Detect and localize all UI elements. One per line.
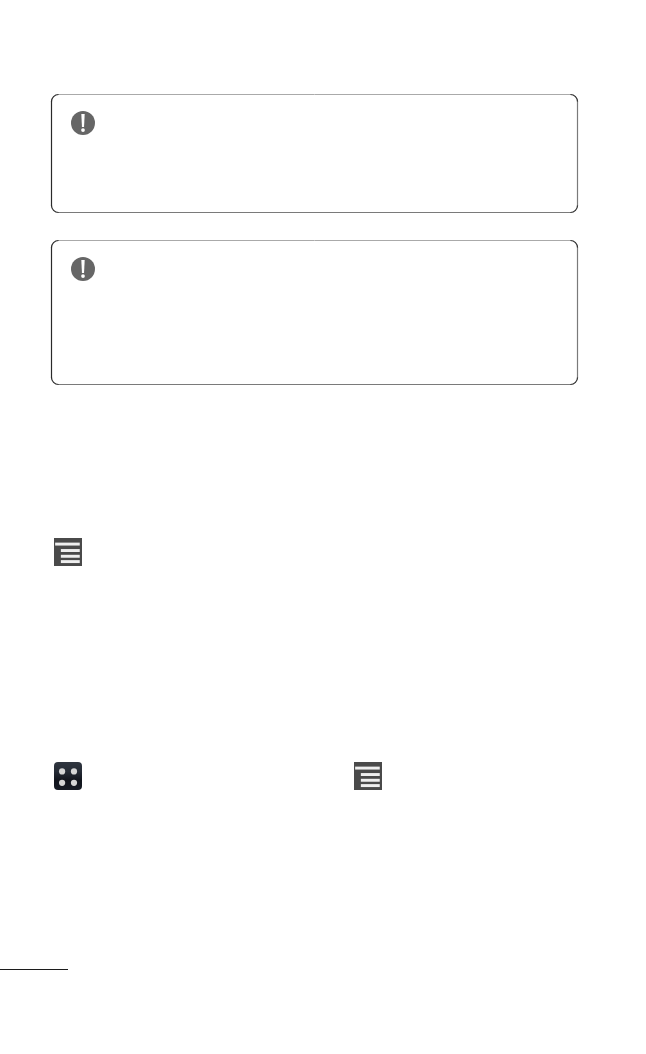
other: Alert [71, 257, 95, 281]
button[interactable]: List view [54, 538, 82, 566]
button[interactable]: Alert [51, 94, 578, 213]
button[interactable]: List view [354, 762, 382, 790]
other: Alert [71, 111, 95, 135]
button[interactable]: Grid view [54, 762, 82, 790]
button[interactable]: Alert [51, 240, 578, 385]
